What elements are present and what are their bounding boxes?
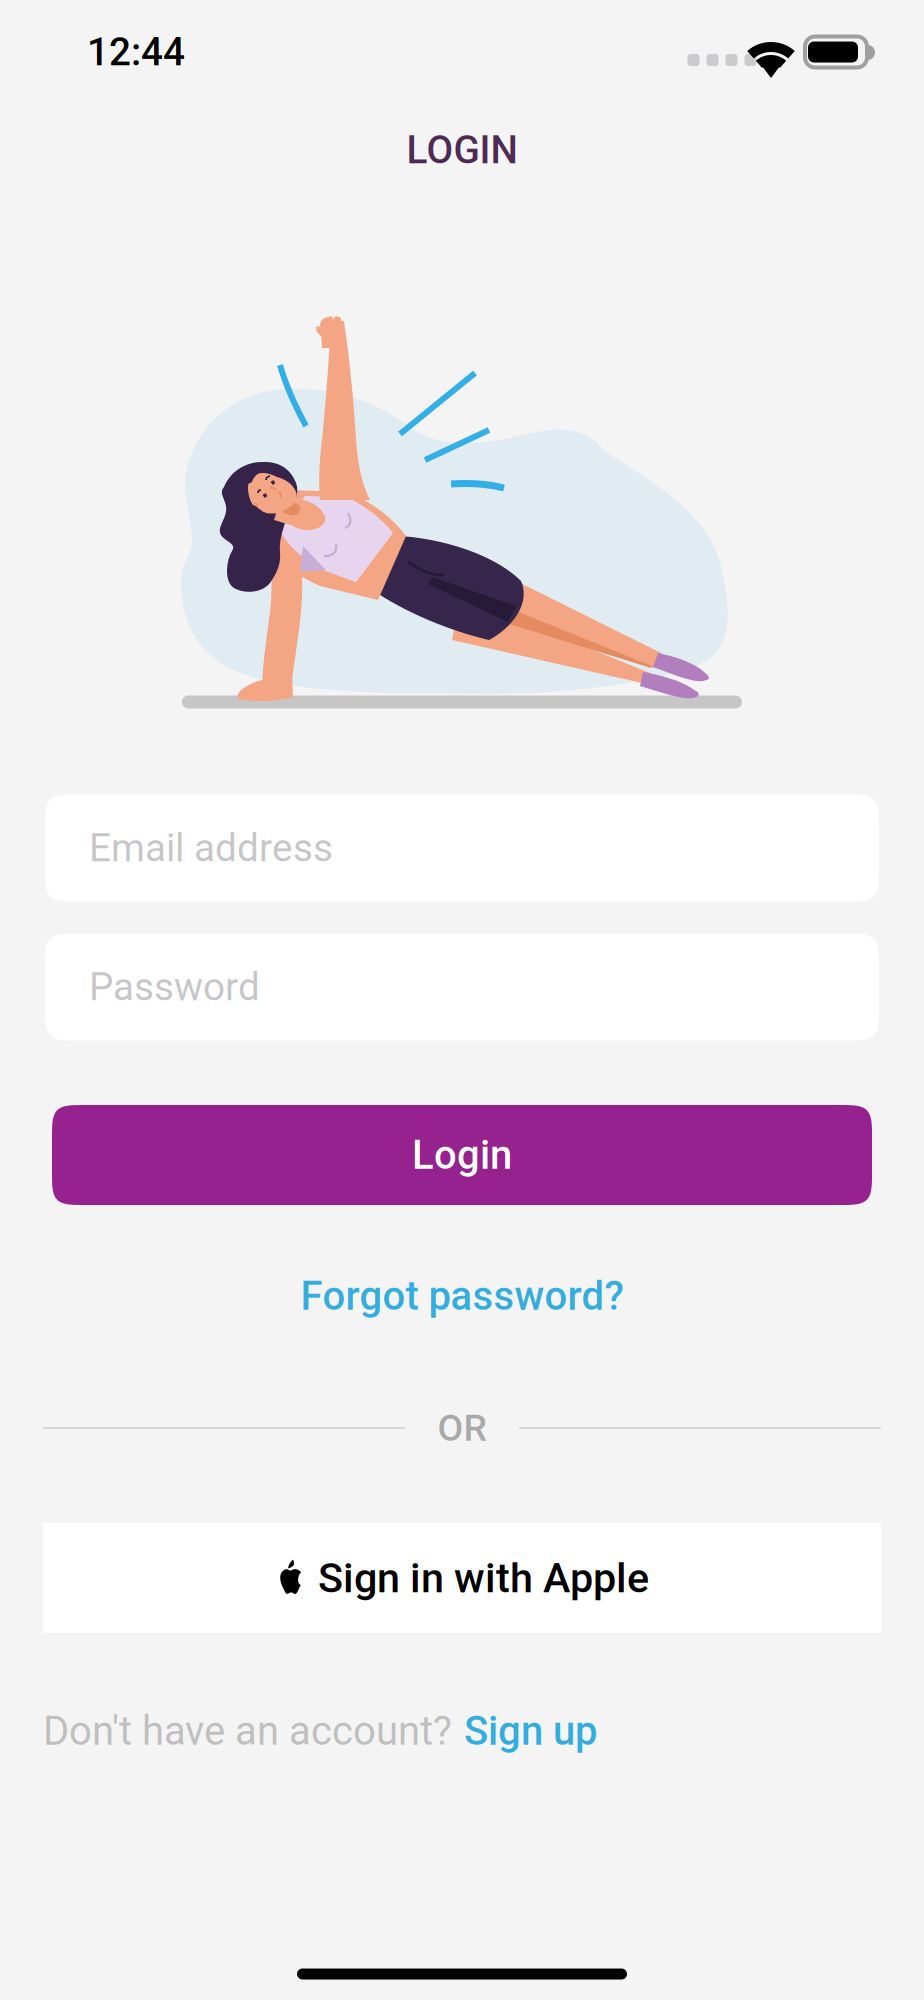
staticText: Login: [412, 1132, 512, 1178]
button[interactable]: Login: [52, 1105, 872, 1205]
button[interactable]: Sign up: [464, 1708, 597, 1754]
staticText: 12:44: [87, 29, 185, 75]
staticText: Email address: [89, 825, 333, 871]
staticText: Sign in with Apple: [318, 1554, 649, 1602]
staticText: Don't have an account?: [43, 1708, 452, 1754]
staticText: Sign up: [464, 1708, 597, 1754]
button[interactable]: Sign in with Apple: [43, 1523, 881, 1633]
button[interactable]: Password: [45, 933, 879, 1040]
button[interactable]: Forgot password?: [262, 1266, 662, 1326]
staticText: Forgot password?: [300, 1273, 623, 1319]
button[interactable]: Email address: [45, 794, 879, 901]
staticText: Password: [89, 964, 260, 1010]
staticText: OR: [437, 1406, 486, 1450]
staticText: LOGIN: [406, 127, 517, 173]
